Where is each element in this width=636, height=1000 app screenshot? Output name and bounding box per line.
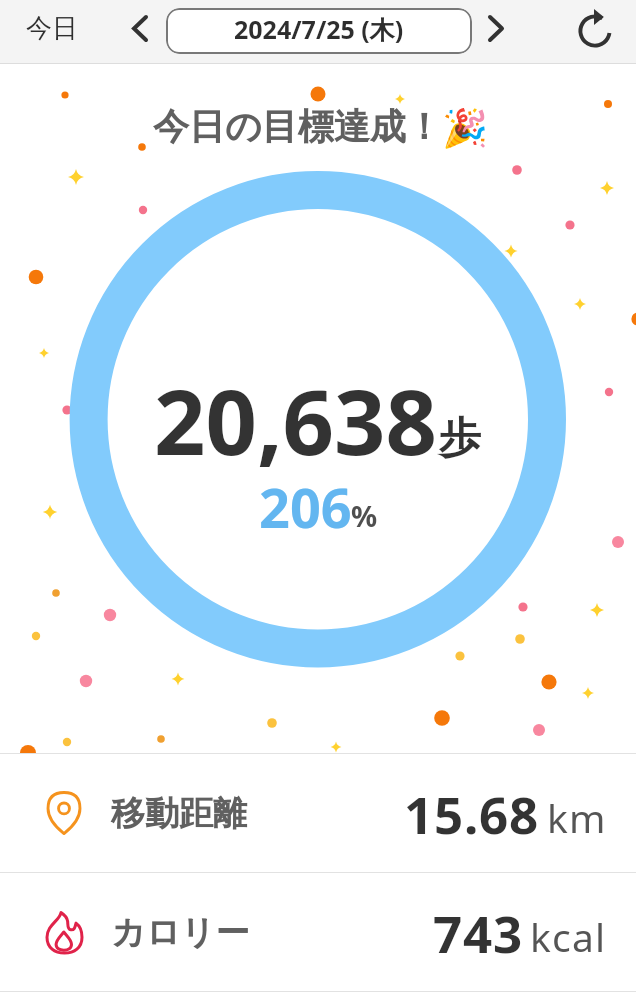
staticText: カロリー bbox=[111, 911, 250, 954]
button[interactable]: カロリー bbox=[0, 873, 636, 991]
staticText: 743 bbox=[433, 898, 523, 967]
staticText: 20,638 bbox=[154, 359, 438, 482]
staticText: 今日の目標達成！ bbox=[153, 104, 442, 149]
staticText: kcal bbox=[530, 910, 607, 963]
staticText: % bbox=[351, 496, 378, 535]
staticText: 今日 bbox=[26, 12, 78, 45]
button[interactable]: Next day bbox=[472, 0, 520, 60]
staticText: 歩 bbox=[439, 412, 481, 465]
button[interactable]: 今日 bbox=[10, 0, 94, 60]
button[interactable]: 2024/7/25 (木) bbox=[166, 8, 472, 54]
staticText: 15.68 bbox=[404, 779, 540, 848]
staticText: 移動距離 bbox=[111, 792, 247, 835]
staticText: 🎉 bbox=[442, 107, 489, 150]
staticText: 206 bbox=[259, 470, 352, 544]
button[interactable]: 移動距離 bbox=[0, 754, 636, 872]
staticText: 2024/7/25 (木) bbox=[234, 12, 404, 46]
button[interactable]: Refresh bbox=[565, 0, 625, 62]
button[interactable]: Previous day bbox=[116, 0, 164, 60]
staticText: km bbox=[547, 791, 607, 844]
